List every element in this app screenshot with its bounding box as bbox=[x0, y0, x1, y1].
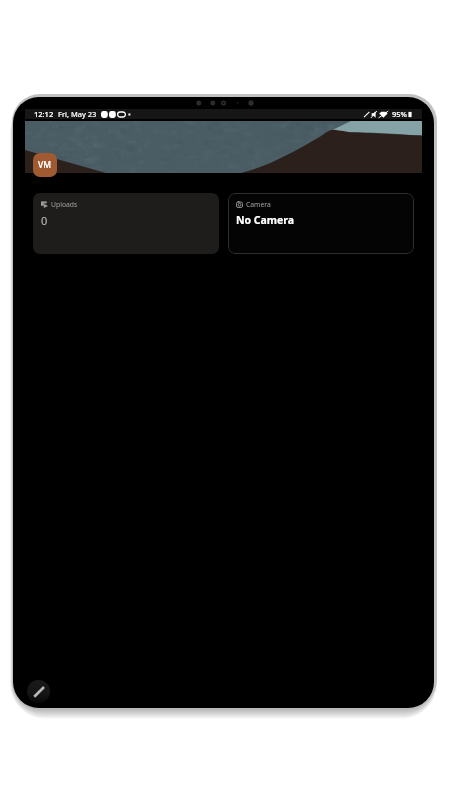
staticText: 95% bbox=[392, 109, 407, 119]
staticText: Uploads bbox=[51, 200, 78, 209]
staticText: Camera bbox=[246, 200, 271, 209]
button[interactable]: VM bbox=[33, 153, 57, 177]
staticText: 0 bbox=[41, 213, 48, 228]
button[interactable]: Edit bbox=[27, 680, 50, 703]
button[interactable]: Camera bbox=[228, 193, 414, 254]
staticText: VM bbox=[38, 159, 52, 171]
staticText: 12:12 bbox=[34, 109, 54, 119]
staticText: No Camera bbox=[236, 213, 295, 227]
button[interactable]: Uploads bbox=[33, 193, 219, 254]
staticText: Fri, May 23 bbox=[58, 109, 97, 119]
